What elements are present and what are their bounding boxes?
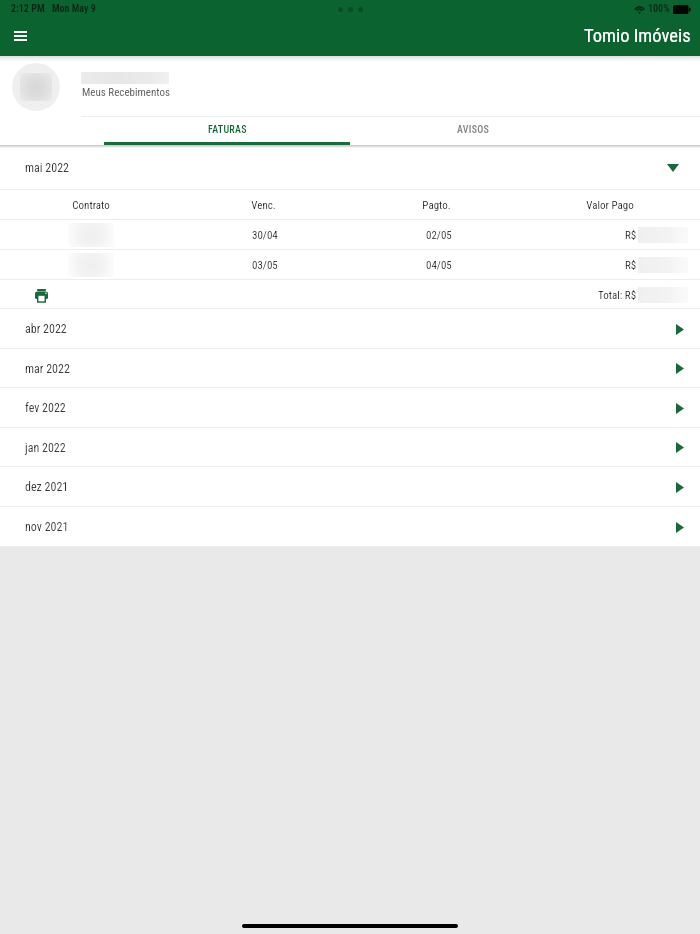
staticText: Contrato xyxy=(72,199,110,212)
button[interactable]: mai 2022 xyxy=(0,145,700,190)
button[interactable]: AVISOS xyxy=(350,117,596,145)
button[interactable]: abr 2022 xyxy=(0,309,700,349)
staticText: Mon May 9 xyxy=(52,3,96,15)
staticText: 03/05 xyxy=(252,259,278,272)
button[interactable]: Print xyxy=(31,285,51,305)
staticText: Total: R$ xyxy=(598,289,637,302)
button[interactable]: mar 2022 xyxy=(0,349,700,388)
button[interactable]: jan 2022 xyxy=(0,428,700,467)
staticText: Venc. xyxy=(251,199,276,212)
staticText: AVISOS xyxy=(457,124,490,136)
button[interactable]: dez 2021 xyxy=(0,467,700,507)
staticText: abr 2022 xyxy=(25,322,67,336)
staticText: nov 2021 xyxy=(25,520,69,534)
staticText: 30/04 xyxy=(252,229,278,242)
staticText: R$ xyxy=(625,259,637,272)
staticText: R$ xyxy=(625,229,637,242)
button[interactable]: FATURAS xyxy=(104,117,350,145)
staticText: 100% xyxy=(648,3,670,15)
staticText: mai 2022 xyxy=(25,161,69,175)
button[interactable]: nov 2021 xyxy=(0,507,700,547)
staticText: fev 2022 xyxy=(25,401,66,415)
staticText: 04/05 xyxy=(426,259,452,272)
button[interactable]: Open navigation menu xyxy=(3,22,37,56)
staticText: Pagto. xyxy=(422,199,451,212)
staticText: mar 2022 xyxy=(25,362,70,376)
staticText: 2:12 PM xyxy=(11,3,45,15)
staticText: Tomio Imóveis xyxy=(584,25,691,47)
staticText: Meus Recebimentos xyxy=(82,86,170,99)
button[interactable]: fev 2022 xyxy=(0,388,700,428)
staticText: Valor Pago xyxy=(586,199,634,212)
staticText: jan 2022 xyxy=(25,441,66,455)
staticText: 02/05 xyxy=(426,229,452,242)
staticText: dez 2021 xyxy=(25,480,69,494)
button[interactable]: Collapse mai 2022 xyxy=(666,155,692,181)
button[interactable]: 03/05 xyxy=(0,250,700,280)
staticText: FATURAS xyxy=(208,124,247,136)
button[interactable]: 30/04 xyxy=(0,220,700,250)
